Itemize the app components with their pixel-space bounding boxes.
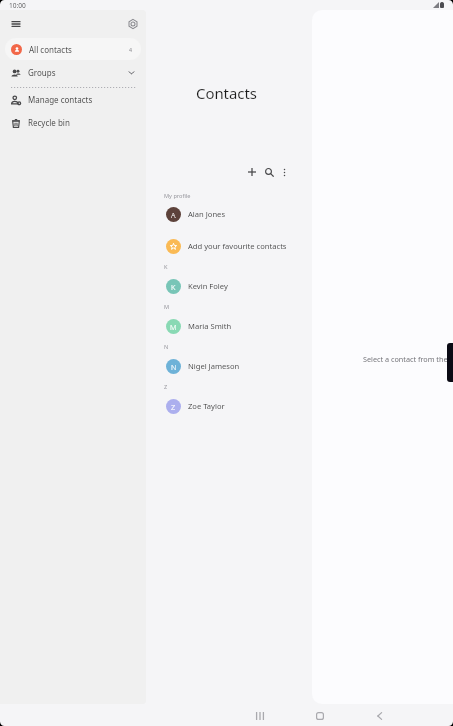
staticText: 10:00 [9,1,26,10]
button[interactable]: All contacts [5,38,141,60]
staticText: Contacts [196,83,258,103]
staticText: A [171,210,176,220]
staticText: Zoe Taylor [188,401,225,411]
button[interactable]: Home [308,705,331,726]
staticText: Maria Smith [188,321,232,331]
staticText: Z [171,402,176,412]
button[interactable]: Recycle bin [0,112,146,133]
staticText: N [164,343,169,351]
button[interactable]: K [146,274,312,298]
staticText: Nigel Jameson [188,361,240,371]
staticText: Recycle bin [28,117,70,128]
button[interactable]: N [146,354,312,378]
button[interactable]: Manage contacts [0,89,146,110]
staticText: Z [164,383,168,391]
staticText: Manage contacts [28,94,93,105]
staticText: Add your favourite contacts [188,241,287,251]
staticText: My profile [164,192,191,200]
button[interactable]: Create contact [242,162,262,182]
button[interactable]: Z [146,394,312,418]
button[interactable]: Settings [123,14,142,33]
staticText: M [164,303,170,311]
button[interactable]: Open navigation menu [6,14,25,33]
button[interactable]: Add your favourite contacts [146,234,312,258]
button[interactable]: Edge panel [447,343,453,382]
button[interactable]: More options [274,162,294,182]
staticText: Groups [28,67,56,78]
staticText: All contacts [29,44,72,55]
staticText: Select a contact from the list. [363,354,453,364]
button[interactable]: Back [368,705,391,726]
staticText: K [164,263,168,271]
staticText: N [171,362,177,372]
button[interactable]: Search [259,162,279,182]
staticText: M [170,322,177,332]
staticText: K [171,282,176,292]
button[interactable]: M [146,314,312,338]
button[interactable]: A [146,202,312,226]
staticText: Alan Jones [188,209,226,219]
staticText: Kevin Foley [188,281,228,291]
button[interactable]: Recent apps [248,705,271,726]
staticText: 4 [129,46,132,53]
button[interactable]: Groups [0,62,146,83]
